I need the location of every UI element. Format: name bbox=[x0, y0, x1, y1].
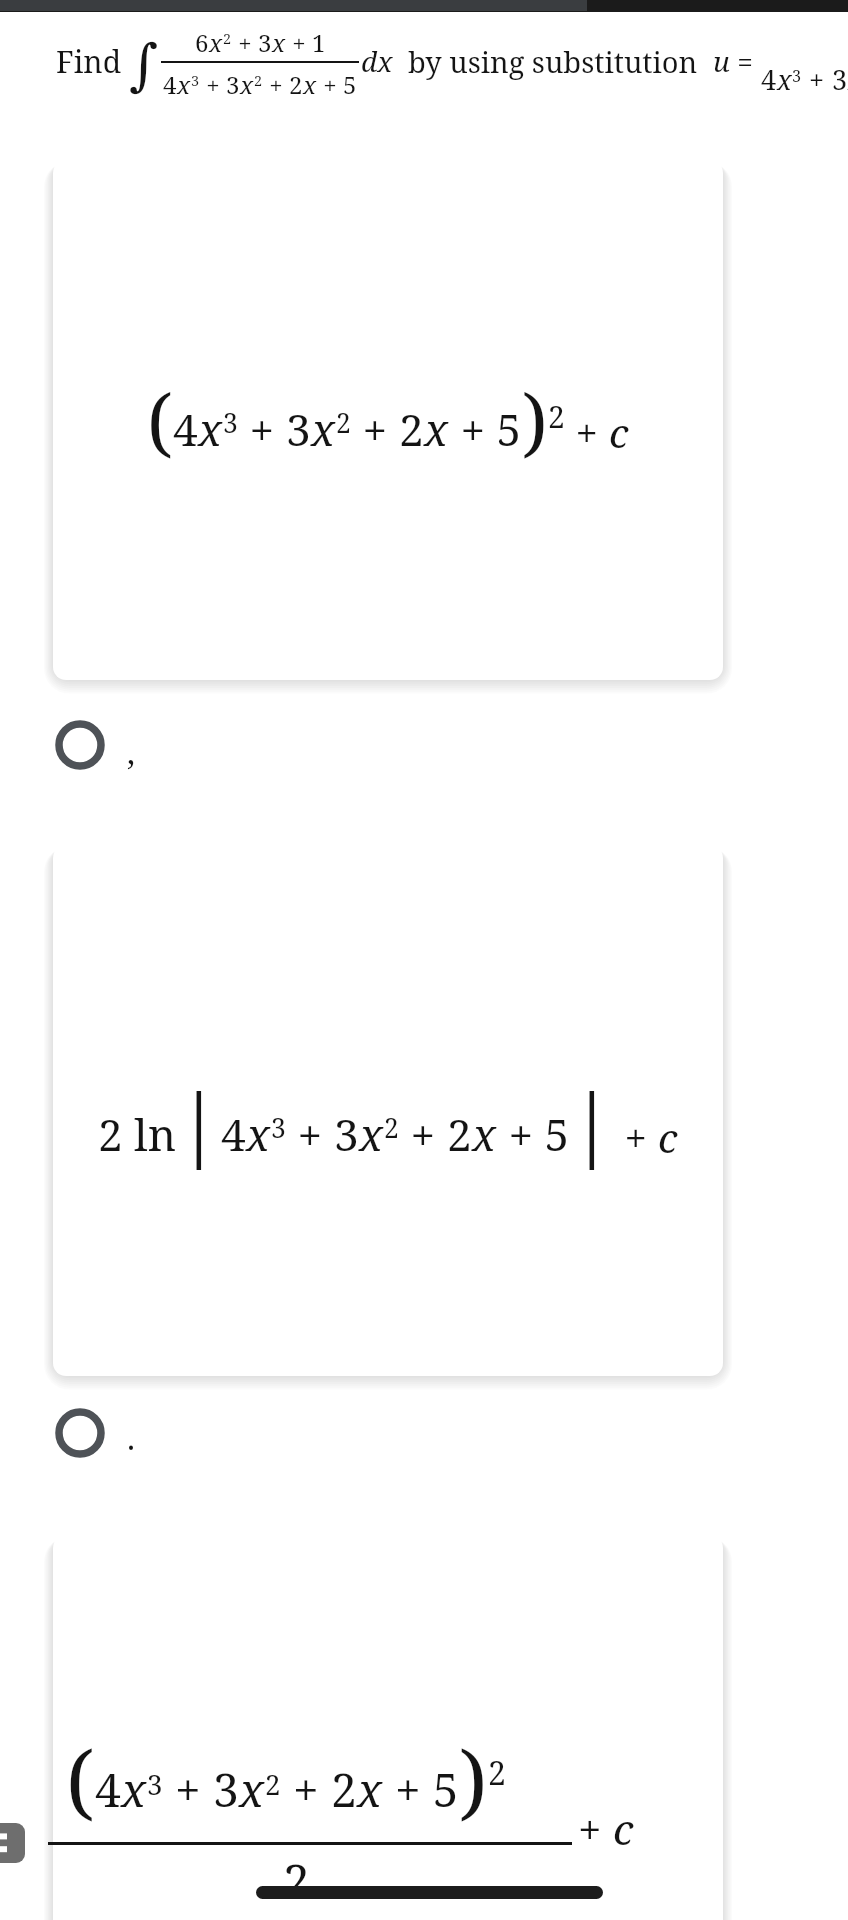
staticText: c bbox=[609, 405, 629, 459]
staticText: 4 bbox=[761, 61, 777, 98]
staticText: + bbox=[614, 1110, 658, 1164]
staticText: x bbox=[198, 399, 223, 459]
staticText: 3 bbox=[286, 399, 311, 459]
staticText: + 5 bbox=[317, 68, 357, 101]
staticText: by using substitution bbox=[393, 42, 713, 81]
staticText: + bbox=[802, 61, 832, 98]
staticText: 2 bbox=[548, 396, 565, 437]
staticText: + bbox=[263, 68, 289, 101]
staticText: 2 bbox=[223, 29, 232, 49]
button[interactable]: ( bbox=[53, 160, 723, 680]
staticText: x bbox=[121, 1758, 147, 1821]
staticText: + 1 bbox=[286, 26, 326, 59]
staticText: x bbox=[303, 68, 317, 101]
staticText: 3 bbox=[334, 1104, 359, 1164]
staticText: 4 bbox=[173, 399, 198, 459]
button[interactable]: Open side panel bbox=[0, 1823, 25, 1863]
staticText: 3 bbox=[832, 61, 848, 98]
staticText: x bbox=[246, 1104, 271, 1164]
staticText: Find bbox=[56, 41, 129, 82]
staticText: ) bbox=[522, 370, 548, 471]
staticText: + bbox=[286, 1104, 334, 1164]
staticText: 2 bbox=[336, 405, 351, 441]
staticText: x bbox=[472, 1104, 497, 1164]
staticText: | bbox=[570, 1068, 614, 1174]
staticText: ∫ bbox=[129, 32, 159, 97]
staticText: + 5 bbox=[497, 1104, 570, 1164]
staticText: 4 bbox=[163, 68, 177, 101]
staticText: x bbox=[777, 61, 792, 98]
staticText: 3 bbox=[191, 71, 200, 91]
staticText: x bbox=[311, 399, 336, 459]
staticText: 4 bbox=[95, 1758, 121, 1821]
staticText: + bbox=[163, 1758, 213, 1821]
staticText: ) bbox=[459, 1723, 488, 1835]
staticText: = bbox=[730, 42, 761, 80]
staticText: + 5 bbox=[383, 1758, 459, 1821]
button[interactable] bbox=[53, 1535, 723, 1920]
staticText: . bbox=[127, 1416, 136, 1460]
button[interactable]: Answer option 1 bbox=[55, 720, 105, 770]
staticText: x bbox=[359, 1104, 384, 1164]
staticText: 3 bbox=[271, 1110, 286, 1146]
staticText: 2 bbox=[447, 1104, 472, 1164]
staticText: 2 bbox=[399, 399, 424, 459]
staticText: c bbox=[613, 1800, 634, 1857]
staticText: x bbox=[239, 1758, 265, 1821]
staticText: 2 bbox=[289, 68, 303, 101]
staticText: x bbox=[272, 26, 286, 59]
staticText: 2 ln bbox=[98, 1104, 177, 1164]
staticText: 2 bbox=[254, 71, 263, 91]
staticText: 3 bbox=[792, 65, 802, 87]
staticText: 6 bbox=[195, 26, 209, 59]
staticText: x bbox=[209, 26, 223, 59]
staticText: + bbox=[281, 1758, 331, 1821]
staticText: x bbox=[424, 399, 449, 459]
staticText: u bbox=[713, 42, 730, 80]
staticText: 2 bbox=[488, 1751, 506, 1795]
staticText: c bbox=[658, 1110, 678, 1164]
button[interactable]: Answer option 2 bbox=[55, 1408, 105, 1458]
staticText: + 3 bbox=[232, 26, 272, 59]
staticText: + bbox=[200, 68, 226, 101]
staticText: 2 bbox=[265, 1765, 281, 1803]
staticText: , bbox=[127, 730, 136, 774]
staticText: dx bbox=[361, 42, 393, 80]
staticText: + bbox=[578, 1800, 613, 1857]
staticText: x bbox=[177, 68, 191, 101]
staticText: x bbox=[357, 1758, 383, 1821]
staticText: 2 bbox=[331, 1758, 357, 1821]
staticText: + bbox=[351, 399, 399, 459]
staticText: ( bbox=[147, 370, 173, 471]
staticText: 3 bbox=[147, 1765, 163, 1803]
button[interactable]: 2 ln bbox=[53, 845, 723, 1376]
staticText: x bbox=[240, 68, 254, 101]
staticText: | bbox=[177, 1068, 221, 1174]
staticText: + 5 bbox=[449, 399, 522, 459]
staticText: 4 bbox=[221, 1104, 246, 1164]
staticText: + bbox=[238, 399, 286, 459]
staticText: 3 bbox=[223, 405, 238, 441]
staticText: 3 bbox=[226, 68, 240, 101]
staticText: + bbox=[565, 405, 609, 459]
staticText: 3 bbox=[213, 1758, 239, 1821]
staticText: 2 bbox=[283, 1848, 310, 1913]
staticText: 2 bbox=[384, 1110, 399, 1146]
staticText: + bbox=[399, 1104, 447, 1164]
staticText: ( bbox=[66, 1723, 95, 1835]
